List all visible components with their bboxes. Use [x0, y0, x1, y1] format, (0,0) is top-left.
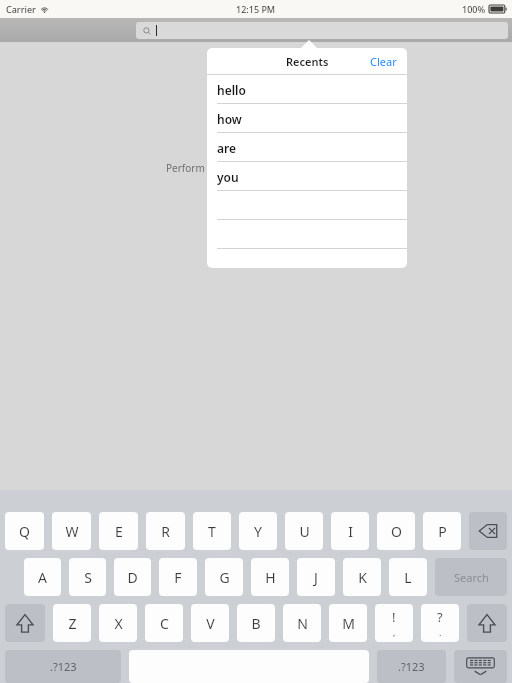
staticText: I	[348, 522, 353, 541]
button[interactable]: .?123	[377, 650, 446, 683]
staticText: Z	[68, 614, 77, 633]
button[interactable]: Shift	[5, 604, 45, 642]
button[interactable]: Y	[239, 512, 277, 550]
button[interactable]: N	[283, 604, 321, 642]
staticText: K	[358, 568, 367, 587]
button[interactable]: I	[331, 512, 369, 550]
staticText: Perform	[166, 161, 205, 175]
staticText: X	[114, 614, 123, 633]
button[interactable]	[207, 220, 407, 249]
button[interactable]: Q	[5, 512, 44, 550]
button[interactable]: A	[24, 558, 61, 596]
button[interactable]: P	[423, 512, 461, 550]
button[interactable]: G	[205, 558, 243, 596]
staticText: ,	[393, 626, 396, 638]
button[interactable]: W	[52, 512, 91, 550]
button[interactable]: R	[146, 512, 185, 550]
staticText: N	[297, 614, 308, 633]
staticText: R	[161, 522, 170, 541]
staticText: .?123	[50, 659, 77, 674]
staticText: E	[115, 522, 123, 541]
button[interactable]: Shift	[467, 604, 507, 642]
button[interactable]: are	[207, 133, 407, 162]
button[interactable]: .?123	[5, 650, 121, 683]
staticText: hello	[217, 82, 246, 98]
staticText: are	[217, 140, 237, 156]
staticText: .	[439, 626, 442, 638]
button[interactable]: H	[251, 558, 289, 596]
staticText: ?	[437, 608, 443, 626]
staticText: Carrier	[6, 3, 36, 15]
staticText: P	[438, 522, 447, 541]
button[interactable]: D	[114, 558, 151, 596]
button[interactable]: C	[145, 604, 183, 642]
staticText: Search	[454, 570, 489, 585]
button[interactable]: F	[159, 558, 197, 596]
staticText: H	[265, 568, 276, 587]
button[interactable]: B	[237, 604, 275, 642]
button[interactable]: !	[375, 604, 413, 642]
staticText: S	[84, 568, 92, 587]
button[interactable]: X	[99, 604, 137, 642]
staticText: G	[219, 568, 230, 587]
staticText: how	[217, 111, 242, 127]
button[interactable]: Hide keyboard	[454, 650, 507, 683]
button[interactable]: Backspace	[469, 512, 507, 550]
staticText: Q	[19, 522, 30, 541]
button[interactable]: L	[389, 558, 427, 596]
button[interactable]	[207, 191, 407, 220]
button[interactable]: O	[377, 512, 415, 550]
staticText: L	[404, 568, 412, 587]
button[interactable]: E	[99, 512, 138, 550]
button[interactable]: hello	[207, 75, 407, 104]
button[interactable]: S	[69, 558, 106, 596]
staticText: !	[392, 608, 396, 626]
staticText: B	[251, 614, 261, 633]
staticText: A	[38, 568, 47, 587]
staticText: C	[160, 614, 169, 633]
staticText: .?123	[398, 659, 425, 674]
button[interactable]: Z	[53, 604, 91, 642]
staticText: F	[174, 568, 182, 587]
staticText: W	[65, 522, 79, 541]
staticText: Y	[254, 522, 262, 541]
button[interactable]: Clear	[360, 48, 407, 74]
button[interactable]: Search	[435, 558, 507, 596]
staticText: D	[127, 568, 138, 587]
button[interactable]: you	[207, 162, 407, 191]
staticText: 12:15 PM	[236, 3, 276, 15]
button[interactable]: T	[193, 512, 231, 550]
button[interactable]	[136, 22, 508, 39]
staticText: V	[206, 614, 215, 633]
staticText: you	[217, 169, 239, 185]
button[interactable]: J	[297, 558, 335, 596]
button[interactable]: M	[329, 604, 367, 642]
staticText: U	[299, 522, 310, 541]
staticText: Recents	[286, 54, 329, 69]
staticText: 100%	[462, 3, 486, 15]
staticText: M	[342, 614, 355, 633]
staticText: T	[208, 522, 216, 541]
button[interactable]: U	[285, 512, 323, 550]
button[interactable]: K	[343, 558, 381, 596]
button[interactable]: V	[191, 604, 229, 642]
staticText: O	[391, 522, 402, 541]
button[interactable]: ?	[421, 604, 459, 642]
staticText: J	[314, 568, 318, 587]
button[interactable]: how	[207, 104, 407, 133]
staticText: Clear	[370, 54, 397, 69]
